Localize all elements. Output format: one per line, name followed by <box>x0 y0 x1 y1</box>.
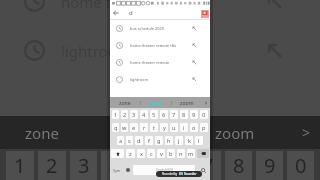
button[interactable]: i <box>180 123 188 132</box>
staticText: h <box>167 137 171 145</box>
button[interactable]: Search <box>197 165 209 175</box>
button[interactable]: a <box>117 136 124 145</box>
staticText: z <box>129 150 132 158</box>
button[interactable]: k <box>185 136 193 145</box>
staticText: p <box>202 124 206 132</box>
staticText: 5 <box>140 152 152 179</box>
staticText: j <box>178 137 180 145</box>
staticText: home theater remote <box>130 60 170 65</box>
staticText: a <box>119 137 123 145</box>
button[interactable]: zone <box>110 97 140 108</box>
staticText: 7 <box>172 111 176 119</box>
button[interactable]: n <box>177 149 185 158</box>
button[interactable]: f <box>145 136 153 145</box>
button[interactable]: 0 <box>200 110 208 119</box>
staticText: r <box>143 124 146 132</box>
button[interactable]: home theater remote t&t <box>110 37 210 54</box>
staticText: t <box>153 124 156 132</box>
button[interactable]: m <box>187 149 195 158</box>
staticText: 6 <box>171 152 183 179</box>
button[interactable]: Sym <box>110 160 123 180</box>
button[interactable]: 4 <box>140 110 148 119</box>
staticText: 4 <box>109 152 121 179</box>
staticText: lightroom <box>61 41 131 61</box>
staticText: u <box>172 124 176 132</box>
button[interactable]: g <box>155 136 163 145</box>
staticText: DU Recorder <box>179 172 197 176</box>
button[interactable]: q <box>112 123 119 132</box>
button[interactable]: 3 <box>130 110 138 119</box>
button[interactable]: l <box>195 136 203 145</box>
staticText: f <box>148 137 150 145</box>
staticText: 2 <box>123 111 127 119</box>
button[interactable]: Space <box>133 165 195 175</box>
staticText: 5 <box>152 111 156 119</box>
button[interactable]: t <box>150 123 158 132</box>
button[interactable]: 5 <box>150 110 158 119</box>
staticText: home th <box>61 0 121 12</box>
button[interactable]: Back <box>110 7 122 19</box>
staticText: 0 <box>202 111 206 119</box>
staticText: Recorded by <box>162 172 178 176</box>
staticText: o <box>192 124 196 132</box>
button[interactable]: Emoji <box>123 160 132 180</box>
button[interactable]: y <box>160 123 168 132</box>
staticText: k <box>188 137 191 145</box>
button[interactable]: 2 <box>121 110 128 119</box>
staticText: 6 <box>162 111 166 119</box>
button[interactable]: u <box>170 123 178 132</box>
staticText: zoom <box>215 123 255 143</box>
button[interactable]: home theater remote <box>110 54 210 71</box>
button[interactable]: b <box>167 149 175 158</box>
button[interactable]: lightroom <box>110 71 210 88</box>
staticText: d <box>137 137 141 145</box>
staticText: 2 <box>46 152 58 179</box>
button[interactable]: 6 <box>160 110 168 119</box>
button[interactable]: 1 <box>112 110 119 119</box>
staticText: home theater remote t&t <box>130 43 176 48</box>
button[interactable]: bus schedule 2020 <box>110 20 210 37</box>
button[interactable]: o <box>190 123 198 132</box>
button[interactable]: r <box>140 123 148 132</box>
button[interactable]: Shift <box>111 149 124 158</box>
staticText: Sym <box>113 168 121 173</box>
button[interactable]: More suggestions <box>202 97 210 108</box>
button[interactable]: w <box>121 123 128 132</box>
staticText: n <box>179 150 183 158</box>
button[interactable]: zoom <box>172 97 202 108</box>
button[interactable]: x <box>137 149 145 158</box>
button[interactable]: h <box>165 136 173 145</box>
button[interactable]: video <box>141 97 171 108</box>
staticText: y <box>163 124 166 132</box>
staticText: English(US) <box>156 168 173 172</box>
button[interactable]: z <box>126 149 135 158</box>
button[interactable]: Backspace <box>197 149 209 158</box>
staticText: w <box>122 124 127 132</box>
button[interactable]: 7 <box>170 110 178 119</box>
button[interactable]: v <box>157 149 165 158</box>
button[interactable]: p <box>200 123 208 132</box>
staticText: 9 <box>192 111 196 119</box>
staticText: c <box>150 150 153 158</box>
staticText: b <box>169 150 173 158</box>
staticText: m <box>188 150 194 158</box>
button[interactable]: d <box>135 136 143 145</box>
button[interactable]: j <box>175 136 183 145</box>
staticText: g <box>157 137 161 145</box>
staticText: 8 <box>182 111 186 119</box>
staticText: 8 <box>233 152 245 179</box>
staticText: q <box>114 124 118 132</box>
staticText: 4 <box>142 111 146 119</box>
button[interactable]: 9 <box>190 110 198 119</box>
staticText: > <box>302 123 311 142</box>
staticText: zone <box>119 99 131 106</box>
button[interactable]: e <box>130 123 138 132</box>
staticText: 7 <box>202 152 214 179</box>
button[interactable]: s <box>126 136 133 145</box>
staticText: x <box>140 150 143 158</box>
button[interactable]: Account <box>200 9 209 18</box>
staticText: l <box>198 137 200 145</box>
button[interactable]: 8 <box>180 110 188 119</box>
button[interactable]: c <box>147 149 155 158</box>
staticText: s <box>128 137 131 145</box>
